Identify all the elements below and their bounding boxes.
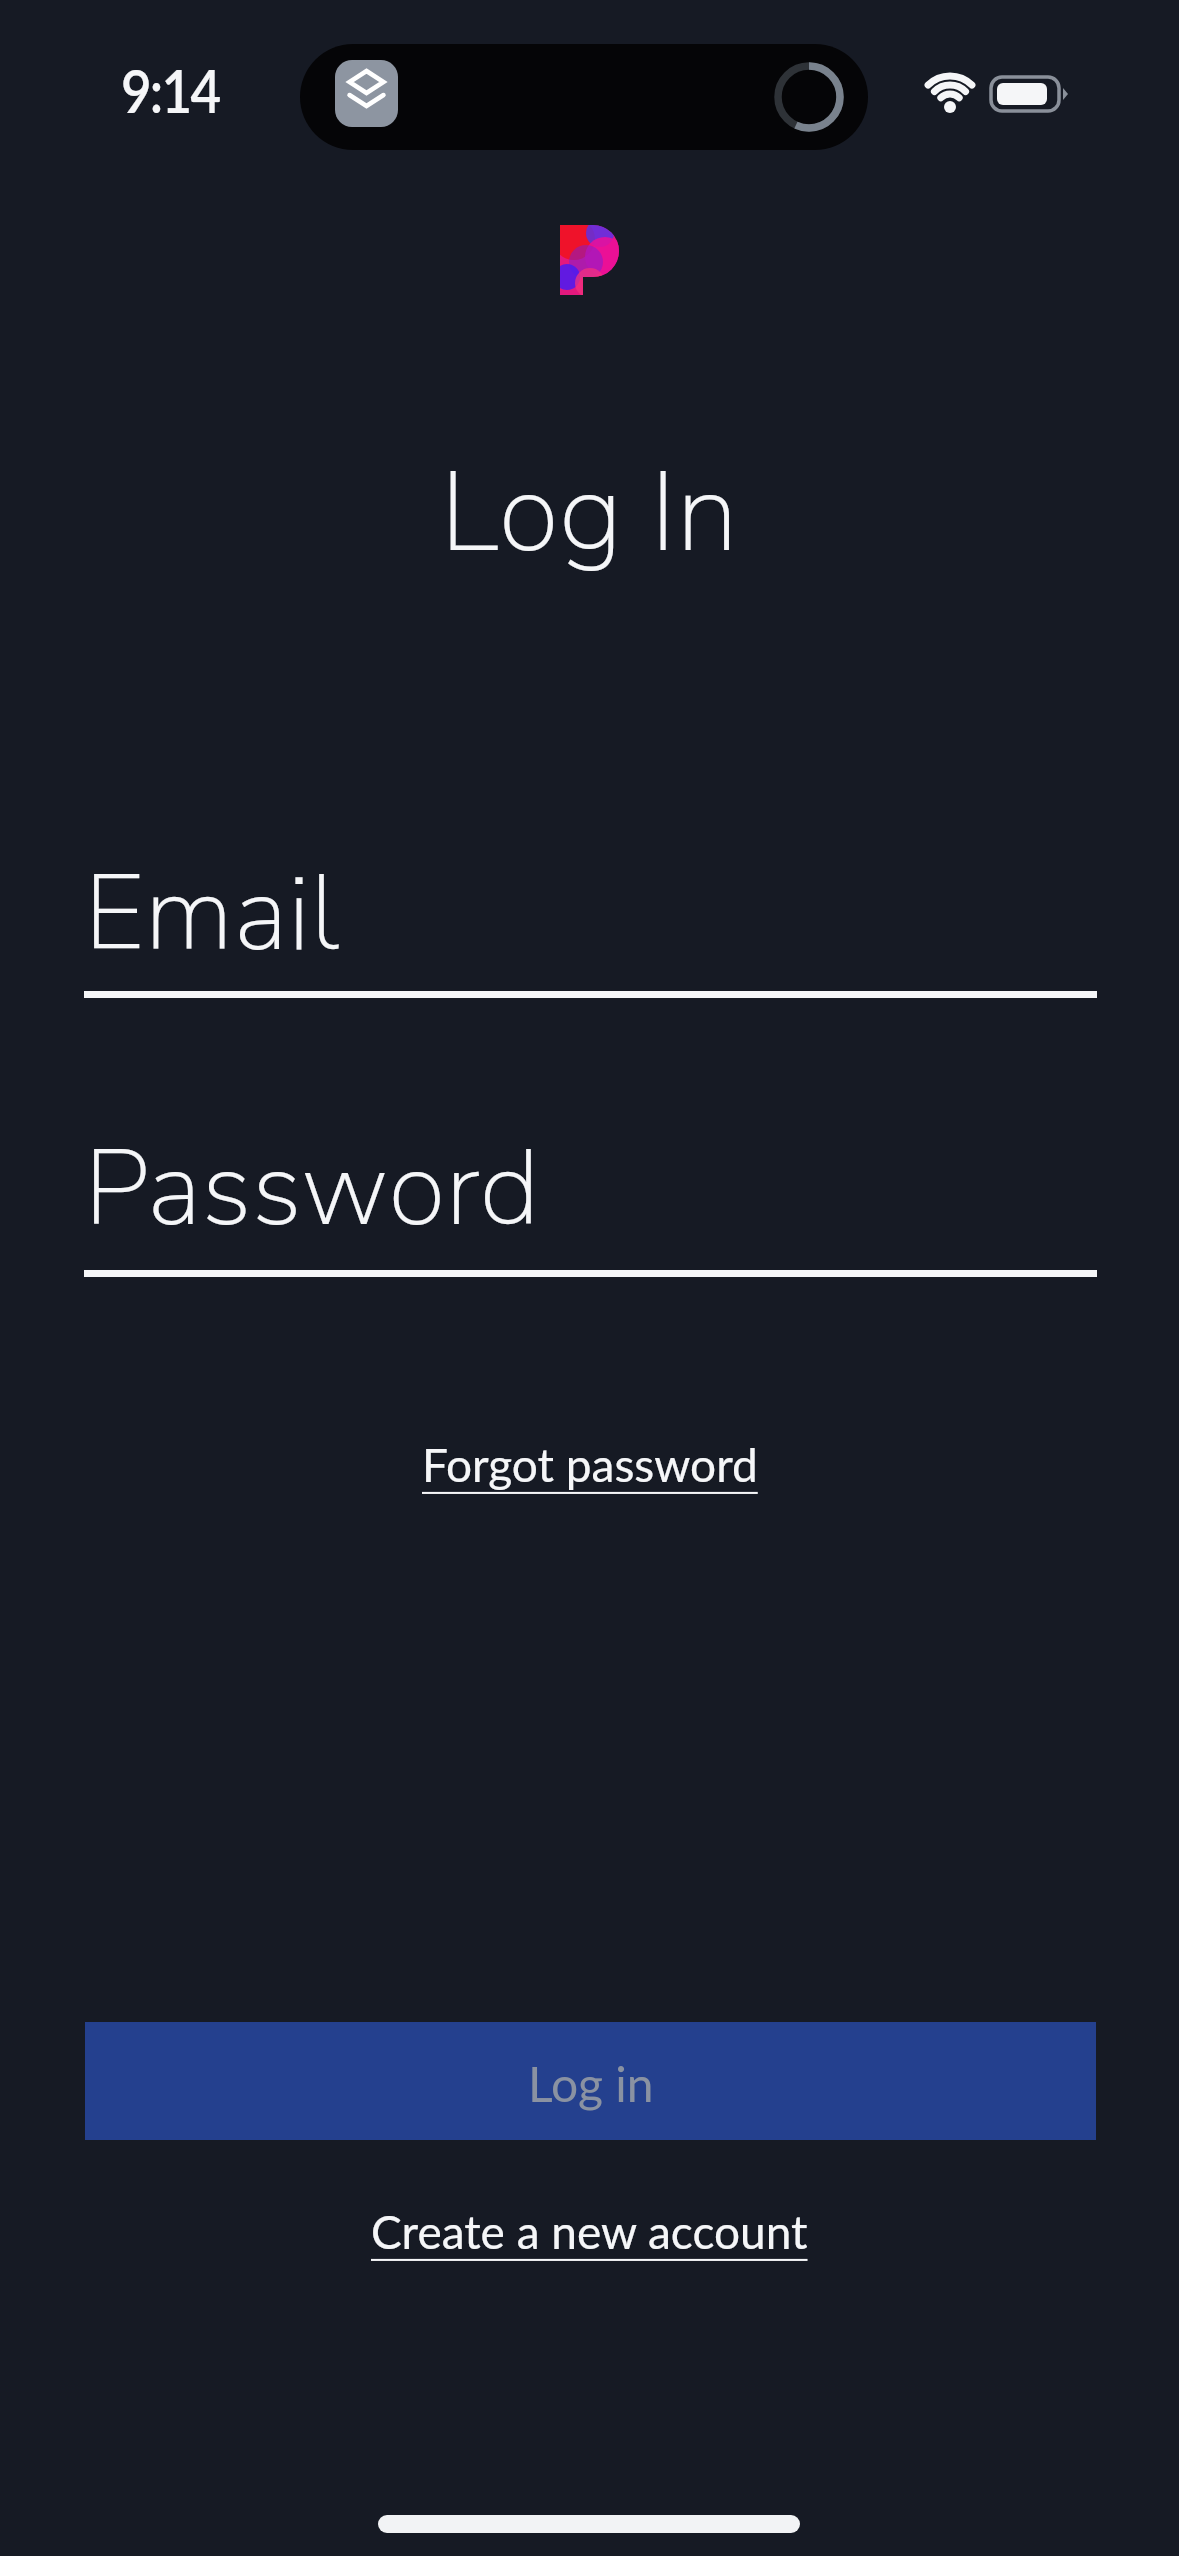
button[interactable]: Log in <box>85 2022 1096 2140</box>
button[interactable]: Forgot password <box>422 1437 758 1492</box>
staticText: Email <box>84 842 340 987</box>
button[interactable]: Email <box>84 842 1097 999</box>
staticText: 9:14 <box>121 54 220 126</box>
staticText: Log in <box>528 2055 654 2113</box>
staticText: Log In <box>440 437 739 590</box>
button[interactable]: Password <box>84 1117 1097 1272</box>
staticText: Password <box>84 1117 540 1262</box>
button[interactable]: Create a new account <box>371 2204 808 2259</box>
